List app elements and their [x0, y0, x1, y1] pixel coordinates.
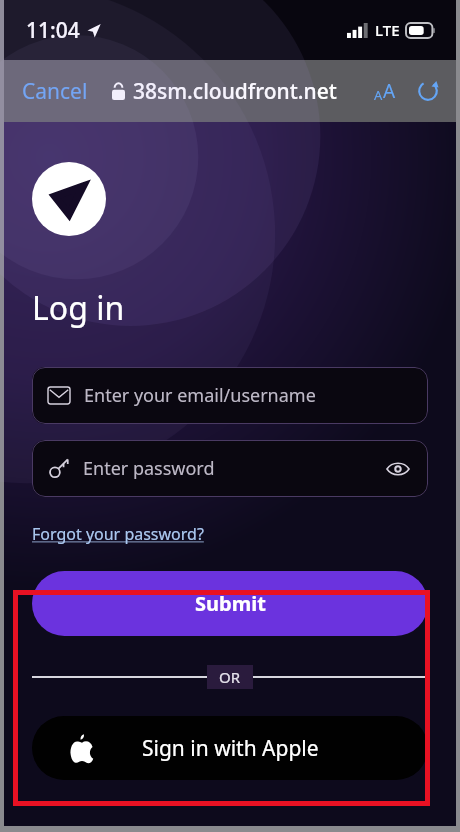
staticText: OR [219, 667, 241, 687]
staticText: Sign in with Apple [142, 734, 319, 763]
button[interactable]: Forgot your password? [32, 523, 204, 545]
button[interactable]: Text size [370, 74, 400, 108]
button[interactable]: Enter password [32, 440, 428, 497]
staticText: Log in [32, 286, 125, 330]
staticText: Enter your email/username [84, 383, 316, 408]
button[interactable]: Sign in with Apple [32, 716, 428, 780]
button[interactable]: Enter your email/username [32, 367, 428, 424]
staticText: A [383, 78, 396, 104]
button[interactable]: Cancel [14, 71, 96, 112]
button[interactable]: Show password [384, 459, 412, 479]
staticText: 38sm.cloudfront.net [133, 77, 337, 106]
button[interactable]: Submit [32, 571, 428, 636]
staticText: 11:04 [26, 16, 80, 45]
staticText: Submit [195, 590, 266, 617]
staticText: A [374, 86, 383, 104]
staticText: Forgot your password? [32, 523, 204, 545]
staticText: Cancel [22, 77, 88, 106]
staticText: LTE [375, 20, 400, 40]
button[interactable]: Reload [414, 77, 442, 105]
staticText: Enter password [83, 456, 215, 481]
